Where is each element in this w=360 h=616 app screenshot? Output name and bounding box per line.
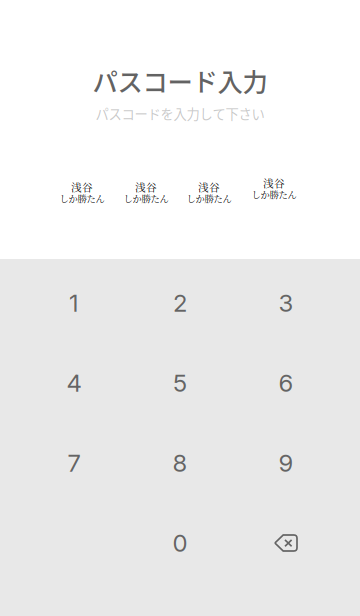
staticText: 5 <box>173 368 187 397</box>
staticText: しか勝たん <box>123 191 168 205</box>
staticText: しか勝たん <box>186 191 231 205</box>
staticText: 1 <box>69 288 79 317</box>
staticText: しか勝たん <box>251 187 296 201</box>
staticText: 浅谷 <box>135 179 157 194</box>
staticText: 3 <box>278 288 293 317</box>
button[interactable]: 9 <box>233 423 339 503</box>
button[interactable]: 1 <box>21 263 127 343</box>
button[interactable]: 7 <box>21 423 127 503</box>
staticText: 0 <box>172 528 187 557</box>
staticText: 浅谷 <box>71 179 93 194</box>
staticText: 6 <box>278 368 293 397</box>
staticText: 8 <box>172 448 187 477</box>
staticText: パスコードを入力して下さい <box>95 104 264 123</box>
staticText: 浅谷 <box>198 179 220 194</box>
staticText: パスコード入力 <box>92 62 267 99</box>
staticText: しか勝たん <box>59 191 104 205</box>
button[interactable]: 3 <box>233 263 339 343</box>
button[interactable]: 5 <box>127 343 233 423</box>
staticText: 2 <box>173 288 187 317</box>
staticText: 浅谷 <box>263 175 285 190</box>
button[interactable]: 4 <box>21 343 127 423</box>
staticText: 9 <box>278 448 293 477</box>
staticText: 4 <box>66 368 81 397</box>
button[interactable]: 2 <box>127 263 233 343</box>
staticText: 7 <box>67 448 80 477</box>
button[interactable]: 0 <box>127 503 233 583</box>
button[interactable]: 6 <box>233 343 339 423</box>
button[interactable]: Delete <box>233 503 339 583</box>
button[interactable]: 8 <box>127 423 233 503</box>
